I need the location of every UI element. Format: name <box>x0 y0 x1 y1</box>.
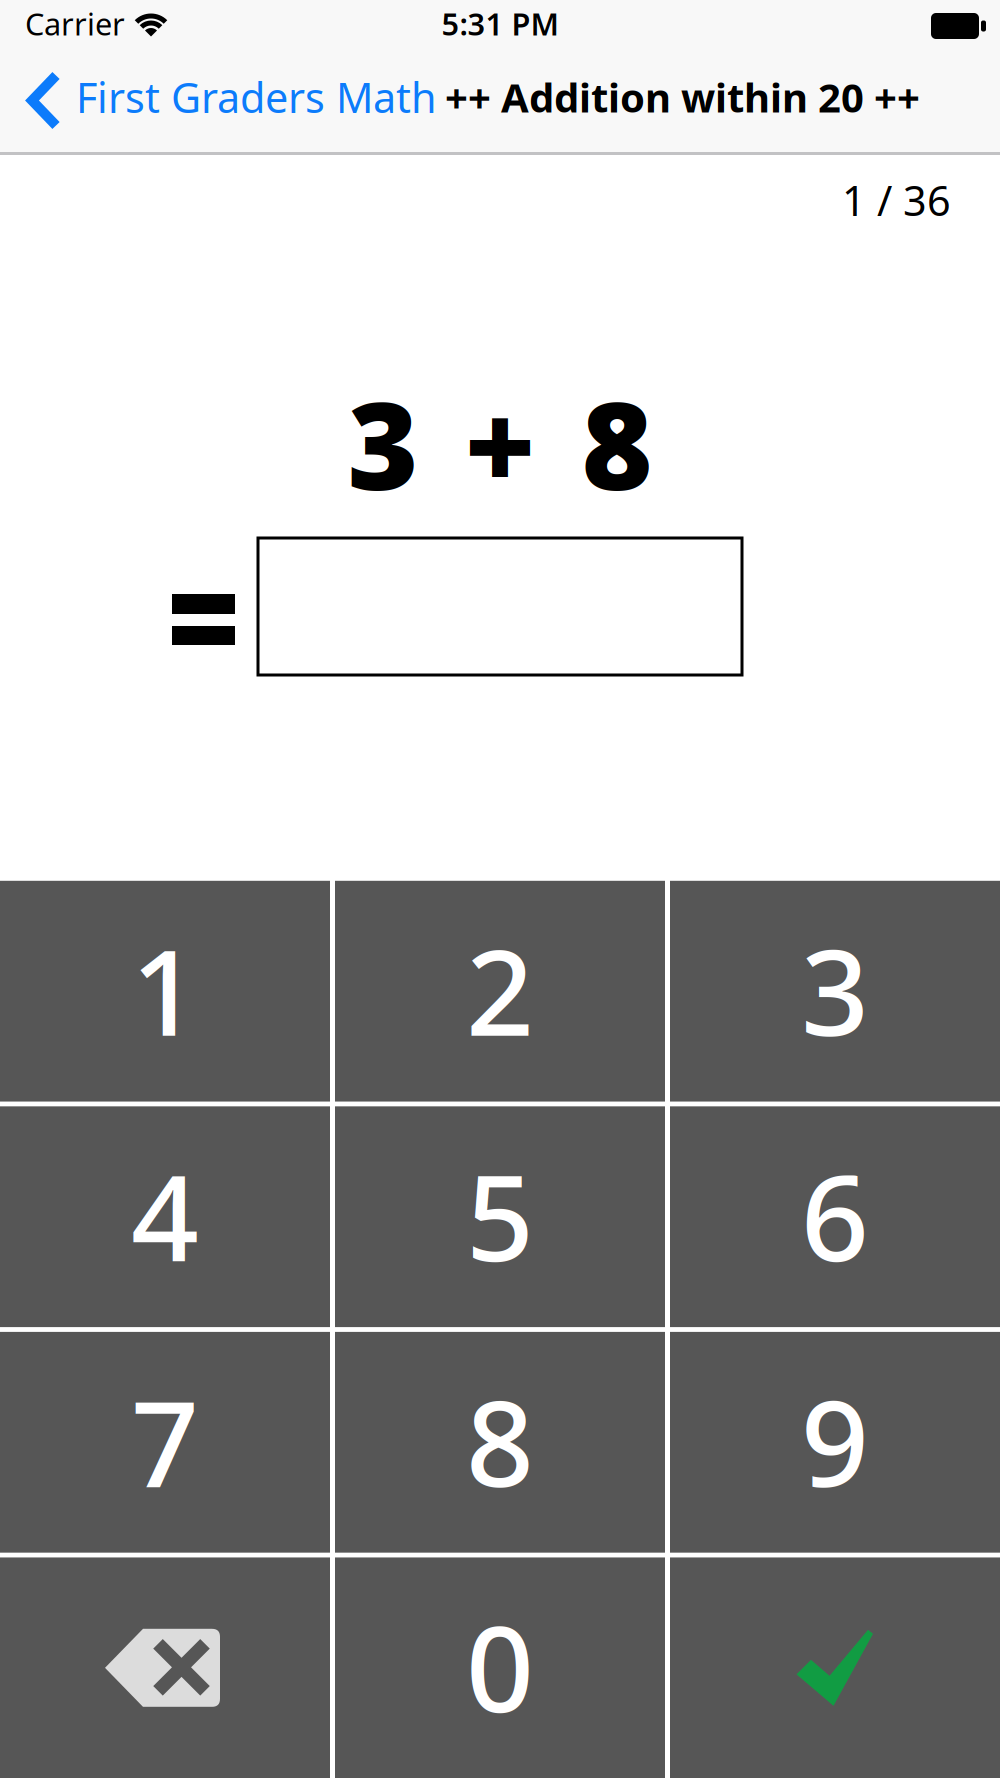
staticText: + <box>464 362 535 523</box>
button[interactable]: 1 <box>0 881 330 1102</box>
staticText: 6 <box>801 1136 869 1294</box>
staticText: 9 <box>801 1362 869 1520</box>
staticText: 8 <box>581 362 652 523</box>
button[interactable]: 3 <box>670 881 1000 1102</box>
button[interactable]: 9 <box>670 1332 1000 1553</box>
button[interactable]: 8 <box>335 1332 665 1553</box>
staticText: 2 <box>466 911 534 1068</box>
button[interactable]: 5 <box>335 1106 665 1327</box>
staticText: 1 / 36 <box>842 173 951 227</box>
staticText: 7 <box>131 1362 199 1520</box>
button[interactable]: 7 <box>0 1332 330 1553</box>
button[interactable]: 0 <box>335 1557 665 1778</box>
button[interactable]: 4 <box>0 1106 330 1327</box>
staticText: Carrier <box>25 3 125 44</box>
staticText: 3 <box>347 362 418 523</box>
staticText: 8 <box>466 1362 534 1520</box>
staticText: 1 <box>131 911 199 1068</box>
button[interactable]: 6 <box>670 1106 1000 1327</box>
button[interactable]: 2 <box>335 881 665 1102</box>
button[interactable]: First Graders Math <box>0 65 437 128</box>
staticText: 0 <box>466 1587 534 1745</box>
staticText: 3 <box>801 911 869 1068</box>
button[interactable] <box>0 1557 330 1778</box>
staticText: 5 <box>466 1136 534 1294</box>
staticText: ++ Addition within 20 ++ <box>445 70 920 123</box>
staticText: 5:31 PM <box>441 3 558 44</box>
staticText: First Graders Math <box>76 70 437 124</box>
staticText: 4 <box>131 1136 199 1294</box>
button[interactable] <box>670 1557 1000 1778</box>
